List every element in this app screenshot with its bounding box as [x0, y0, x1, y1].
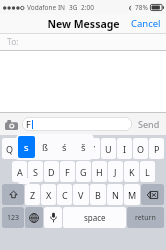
button[interactable]: K [124, 161, 139, 182]
button[interactable]: O [133, 138, 148, 159]
staticText: 3G [69, 3, 78, 12]
staticText: Cancel [131, 17, 161, 30]
staticText: ś [62, 141, 67, 154]
staticText: C [62, 189, 68, 201]
staticText: X [46, 189, 52, 201]
staticText: return [135, 213, 156, 223]
button[interactable]: Shift [2, 184, 24, 205]
button[interactable]: B [90, 184, 106, 205]
button[interactable]: F [60, 161, 75, 182]
staticText: D [48, 166, 55, 178]
button[interactable]: Camera [4, 118, 18, 131]
staticText: s [24, 141, 29, 154]
button[interactable]: R [53, 138, 68, 159]
button[interactable]: N [107, 184, 123, 205]
button[interactable]: Q [2, 138, 18, 159]
staticText: Y [90, 143, 96, 155]
button[interactable]: F [22, 117, 132, 131]
button[interactable]: 123 [2, 207, 24, 228]
button[interactable]: return [127, 207, 164, 228]
staticText: E [41, 143, 47, 155]
button[interactable]: S [28, 161, 43, 182]
staticText: R [58, 143, 64, 155]
staticText: 123 [7, 213, 20, 223]
staticText: B [95, 189, 101, 201]
button[interactable]: V [73, 184, 89, 205]
staticText: V [78, 189, 84, 201]
button[interactable]: E [36, 138, 52, 159]
button[interactable]: D [44, 161, 59, 182]
button[interactable]: A [12, 161, 27, 182]
button[interactable]: M [124, 184, 140, 205]
button[interactable]: Cancel [126, 14, 166, 33]
staticText: Send [138, 118, 160, 130]
staticText: U [105, 143, 112, 155]
staticText: I [123, 143, 127, 155]
staticText: space [84, 212, 106, 223]
staticText: P [154, 143, 160, 155]
button[interactable]: H [92, 161, 107, 182]
button[interactable]: ß [36, 136, 54, 158]
button[interactable]: T [69, 138, 84, 159]
staticText: G [80, 166, 87, 178]
button[interactable]: J [108, 161, 123, 182]
button[interactable]: Dictation [44, 207, 62, 228]
button[interactable]: Send [136, 115, 162, 133]
staticText: Q [6, 143, 14, 155]
button[interactable]: Delete [141, 184, 164, 205]
button[interactable]: Y [85, 138, 100, 159]
button[interactable]: C [57, 184, 72, 205]
button[interactable]: G [76, 161, 91, 182]
button[interactable]: Switch keyboard language [25, 207, 43, 228]
staticText: Z [30, 189, 36, 201]
button[interactable]: U [101, 138, 116, 159]
staticText: O [137, 143, 145, 155]
staticText: K [129, 166, 135, 178]
button[interactable]: I [117, 138, 132, 159]
button[interactable]: W [19, 138, 35, 159]
button[interactable]: š [74, 136, 92, 158]
staticText: F [26, 118, 31, 130]
staticText: To: [7, 36, 19, 48]
staticText: N [112, 189, 119, 201]
staticText: W [23, 143, 32, 155]
staticText: 2:00 [81, 3, 94, 12]
button[interactable]: P [149, 138, 164, 159]
staticText: H [96, 166, 103, 178]
button[interactable]: s [18, 136, 35, 158]
button[interactable]: space [63, 207, 126, 228]
staticText: š [81, 141, 86, 154]
button[interactable]: L [140, 161, 155, 182]
button[interactable]: To: [0, 34, 166, 50]
staticText: S [33, 166, 38, 178]
staticText: Vodafone IN [27, 3, 66, 12]
staticText: L [145, 166, 150, 178]
staticText: M [128, 189, 137, 201]
staticText: New Message [47, 17, 120, 31]
staticText: F [65, 166, 70, 178]
button[interactable]: ś [55, 136, 73, 158]
staticText: A [17, 166, 23, 178]
staticText: ß [42, 141, 48, 154]
staticText: 78% [135, 3, 148, 12]
button[interactable]: Z [25, 184, 40, 205]
staticText: J [114, 166, 117, 178]
button[interactable]: X [41, 184, 56, 205]
